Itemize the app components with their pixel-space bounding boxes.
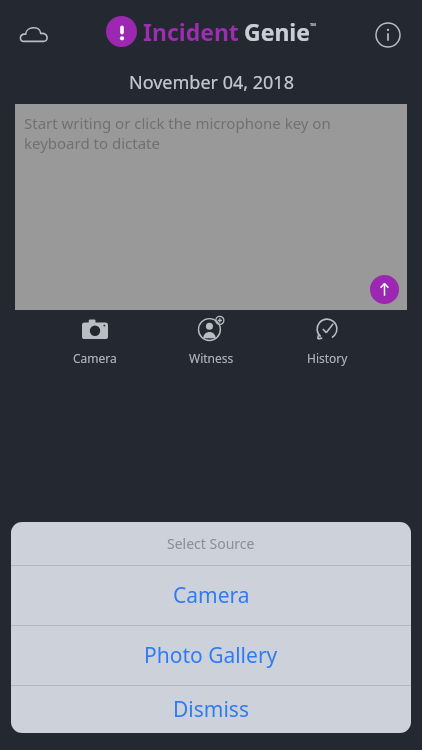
button[interactable]: Information [366,13,410,57]
button[interactable]: History [282,312,372,370]
staticText: Start writing or click the microphone ke… [24,113,331,153]
button[interactable]: Photo Gallery [11,626,411,685]
staticText: Camera [173,581,250,610]
staticText: Genie [244,16,310,47]
staticText: ™ [310,20,317,31]
button[interactable]: Camera [50,312,140,370]
staticText: Incident [143,16,239,47]
button[interactable]: Start writing or click the microphone ke… [15,104,407,310]
staticText: Photo Gallery [144,641,278,670]
button[interactable]: Submit note [370,275,399,304]
staticText: Witness [189,350,234,366]
button[interactable]: Cloud sync [12,13,56,57]
button[interactable]: Camera [11,566,411,625]
staticText: Select Source [167,534,255,553]
button[interactable]: Dismiss [11,686,411,733]
staticText: November 04, 2018 [129,70,294,95]
staticText: Camera [73,350,117,366]
button[interactable]: Add witness [166,312,256,370]
staticText: Dismiss [173,695,249,724]
staticText: History [307,350,348,366]
